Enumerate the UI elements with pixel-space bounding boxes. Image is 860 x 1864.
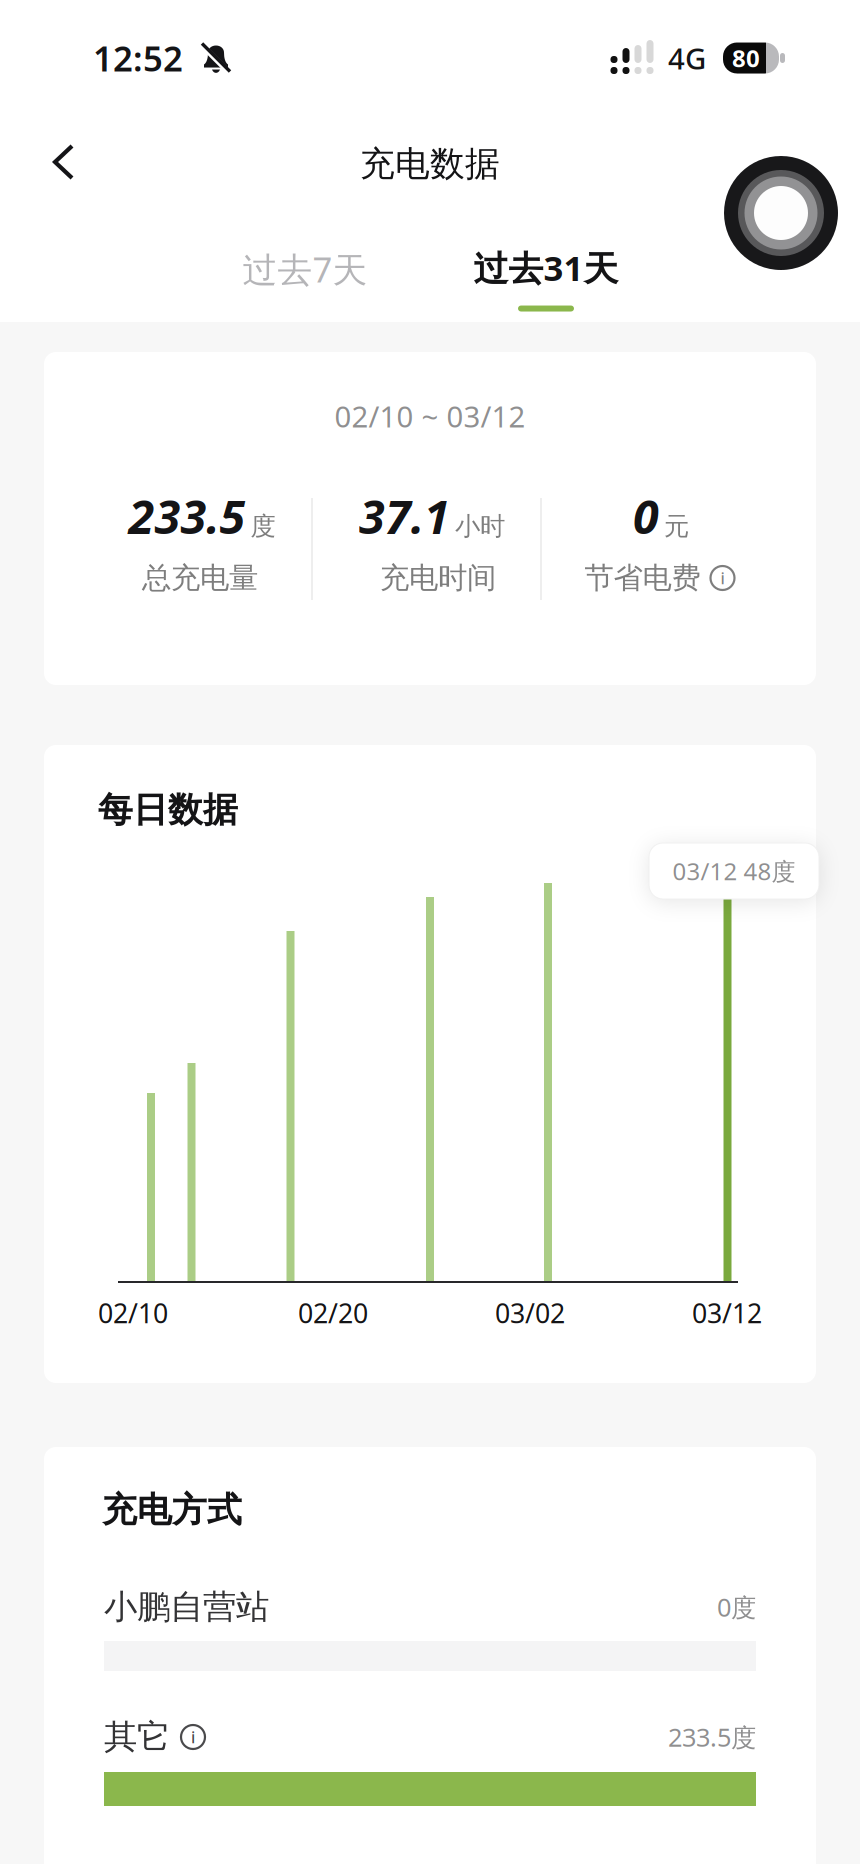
staticText: 03/12 48度 <box>672 855 795 887</box>
staticText: 02/10 ~ 03/12 <box>334 396 525 435</box>
staticText: 4G <box>668 38 706 77</box>
staticText: 233.5 <box>128 485 245 547</box>
staticText: 充电时间 <box>380 560 496 596</box>
staticText: 充电数据 <box>360 143 500 185</box>
staticText: 0 <box>633 485 659 547</box>
button[interactable] <box>36 134 92 190</box>
staticText: 小时 <box>455 511 505 542</box>
staticText: 02/20 <box>298 1295 368 1331</box>
staticText: 02/10 <box>98 1295 168 1331</box>
staticText: 233.5度 <box>668 1720 756 1754</box>
staticText: 每日数据 <box>98 789 238 831</box>
staticText: 充电方式 <box>102 1489 242 1531</box>
staticText: 12:52 <box>93 35 183 81</box>
staticText: 03/02 <box>495 1295 565 1331</box>
staticText: 度 <box>250 511 275 542</box>
staticText: 03/12 <box>692 1295 762 1331</box>
staticText: 80 <box>732 42 760 74</box>
staticText: 元 <box>664 511 689 542</box>
staticText: 过去7天 <box>242 246 367 292</box>
staticText: i <box>720 567 724 589</box>
staticText: 其它 <box>104 1716 170 1757</box>
button[interactable]: 过去31天 <box>436 230 656 326</box>
button[interactable]: i <box>180 1724 206 1750</box>
button[interactable]: 过去7天 <box>195 234 415 304</box>
button[interactable]: i <box>709 565 735 591</box>
staticText: 总充电量 <box>142 560 258 596</box>
staticText: i <box>191 1726 195 1748</box>
staticText: 节省电费 <box>584 560 700 596</box>
staticText: 小鹏自营站 <box>104 1586 269 1627</box>
staticText: 过去31天 <box>473 244 618 290</box>
staticText: 37.1 <box>359 485 450 547</box>
staticText: 0度 <box>717 1590 756 1624</box>
